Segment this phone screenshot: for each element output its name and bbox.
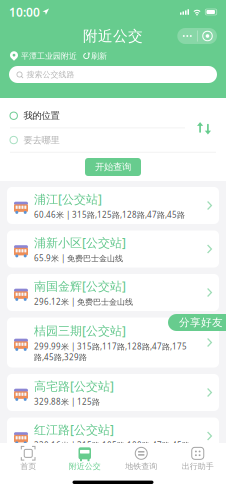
staticText: 首页 bbox=[20, 461, 36, 471]
staticText: 红江路[公交站] bbox=[34, 421, 114, 437]
staticText: 329.88米 | 125路 bbox=[34, 396, 100, 407]
button[interactable]: 刷新 bbox=[77, 49, 107, 63]
staticText: 刷新 bbox=[91, 51, 107, 61]
button[interactable]: 高宅路[公交站] bbox=[7, 374, 219, 411]
staticText: 南国金辉[公交站] bbox=[34, 278, 126, 294]
button[interactable]: 南国金辉[公交站] bbox=[7, 274, 219, 311]
staticText: 桔园三期[公交站] bbox=[34, 323, 126, 339]
staticText: 要去哪里 bbox=[23, 134, 59, 146]
button[interactable]: 浦江[公交站] bbox=[7, 187, 219, 224]
staticText: 附近公交 bbox=[83, 27, 143, 45]
staticText: 平潭工业园附近 bbox=[21, 51, 77, 61]
staticText: 地铁查询 bbox=[125, 461, 157, 471]
staticText: 附近公交 bbox=[69, 461, 101, 471]
staticText: 299.99米 | 315路,117路,128路,47路,175路,45路,32… bbox=[34, 341, 187, 362]
staticText: 搜索公交线路 bbox=[26, 70, 74, 79]
button[interactable]: 开始查询 bbox=[85, 158, 141, 176]
button[interactable]: More options bbox=[177, 28, 217, 44]
staticText: 高宅路[公交站] bbox=[34, 378, 114, 394]
button[interactable]: 首页 bbox=[0, 443, 56, 475]
button[interactable]: 搜索公交线路 bbox=[9, 66, 217, 83]
button[interactable]: 出行助手 bbox=[169, 443, 226, 475]
staticText: 65.9米 | 免费巴士金山线 bbox=[34, 253, 123, 263]
staticText: 296.12米 | 免费巴士金山线 bbox=[34, 296, 133, 307]
staticText: 开始查询 bbox=[95, 161, 131, 173]
button[interactable]: 地铁查询 bbox=[113, 443, 169, 475]
staticText: 浦新小区[公交站] bbox=[34, 234, 126, 250]
staticText: 330.16米 | 315路,105路,100路,47路,45路 bbox=[34, 440, 190, 450]
staticText: 分享好友 bbox=[179, 316, 223, 329]
staticText: 我的位置 bbox=[23, 110, 59, 121]
staticText: 浦江[公交站] bbox=[34, 191, 102, 207]
button[interactable]: Swap origin and destination bbox=[189, 104, 219, 152]
button[interactable]: 附近公交 bbox=[56, 443, 113, 475]
staticText: 60.46米 | 315路,125路,128路,47路,45路 bbox=[34, 209, 185, 220]
button[interactable]: 桔园三期[公交站] bbox=[7, 317, 219, 367]
button[interactable]: 红江路[公交站] bbox=[7, 417, 219, 454]
button[interactable]: 分享好友 bbox=[168, 314, 226, 331]
staticText: 出行助手 bbox=[182, 461, 214, 471]
staticText: 10:00 bbox=[9, 4, 40, 20]
button[interactable]: 浦新小区[公交站] bbox=[7, 230, 219, 267]
